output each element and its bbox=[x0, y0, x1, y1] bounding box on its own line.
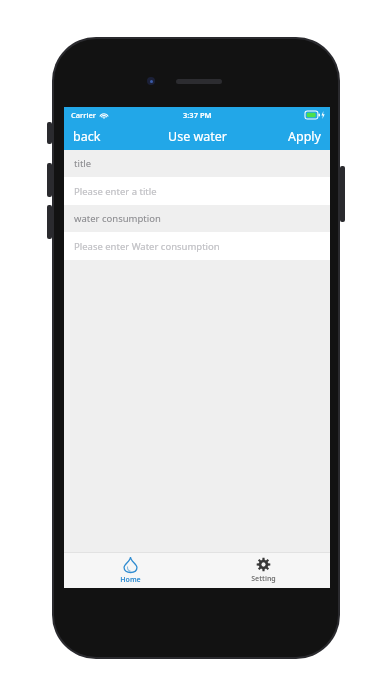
button[interactable]: Please enter a title bbox=[64, 177, 330, 205]
staticText: Please enter Water consumption bbox=[74, 240, 220, 253]
button[interactable]: Setting bbox=[197, 553, 330, 588]
staticText: Setting bbox=[251, 574, 276, 584]
staticText: Home bbox=[120, 575, 141, 585]
staticText: Apply bbox=[288, 128, 321, 145]
staticText: water consumption bbox=[74, 212, 161, 225]
button[interactable]: Apply bbox=[279, 122, 330, 150]
staticText: Carrier bbox=[71, 110, 96, 120]
button[interactable]: Please enter Water consumption bbox=[64, 232, 330, 260]
button[interactable]: Home bbox=[64, 553, 197, 588]
staticText: 3:37 PM bbox=[183, 110, 212, 120]
staticText: back bbox=[73, 128, 101, 145]
staticText: Please enter a title bbox=[74, 185, 157, 198]
staticText: title bbox=[74, 157, 92, 170]
button[interactable]: back bbox=[64, 122, 110, 150]
staticText: Use water bbox=[168, 128, 227, 145]
